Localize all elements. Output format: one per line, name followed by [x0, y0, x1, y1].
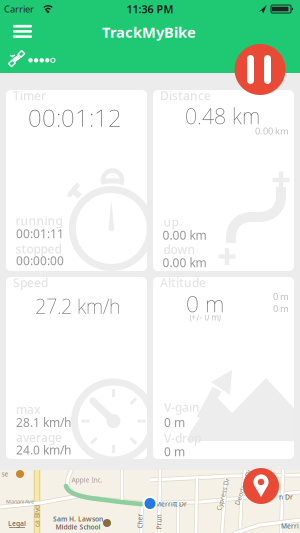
staticText: Merritt Dr	[155, 500, 187, 508]
staticText: Cher	[132, 517, 147, 525]
staticText: Middle School	[55, 523, 100, 531]
staticText: running	[15, 213, 62, 229]
staticText: 24.0 km/h	[16, 442, 71, 458]
staticText: TrackMyBike	[102, 22, 196, 42]
staticText: Mariani Ave	[6, 498, 34, 505]
staticText: n Dr	[279, 493, 293, 501]
staticText: Merri	[281, 522, 299, 530]
staticText: average	[16, 429, 62, 445]
staticText: 0 m	[164, 444, 185, 460]
staticText: V-drop	[164, 430, 201, 446]
staticText: 00:01:11	[16, 225, 64, 241]
staticText: Cypress Dr	[206, 490, 240, 498]
staticText: max	[16, 401, 41, 417]
staticText: Prun	[151, 518, 166, 526]
button[interactable]: Menu	[11, 24, 33, 39]
staticText: Sam H. Lawson	[53, 515, 103, 523]
staticText: Deodara Dr	[224, 483, 262, 491]
staticText: 0 m	[164, 414, 185, 430]
button[interactable]: Show current location	[243, 468, 279, 504]
button[interactable]: Pause	[234, 44, 285, 95]
staticText: Speed	[13, 274, 48, 290]
staticText: 0.00 km	[255, 125, 289, 137]
staticText: 0 m	[273, 302, 289, 315]
staticText: Altitude	[160, 274, 206, 290]
staticText: stopped	[15, 241, 61, 257]
staticText: down	[163, 241, 195, 257]
staticText: 00:01:12	[28, 102, 122, 133]
staticText: Legal	[8, 519, 26, 528]
staticText: Apple Inc.	[71, 476, 102, 484]
staticText: 0 m	[186, 288, 224, 318]
staticText: Distance	[160, 87, 211, 103]
staticText: 0.00 km	[162, 254, 206, 270]
staticText: Timer	[13, 87, 46, 103]
staticText: up	[163, 214, 178, 230]
staticText: 00:00:00	[16, 253, 64, 269]
staticText: 27.2 km/h	[35, 293, 120, 319]
staticText: 11:36 PM	[126, 2, 173, 16]
staticText: Carrier	[4, 3, 34, 15]
staticText: 0 m	[273, 290, 289, 303]
staticText: V-gain	[164, 399, 200, 415]
staticText: (+/- 0 m)	[189, 312, 220, 323]
staticText: 0.00 km	[162, 227, 206, 243]
staticText: ca Blvd	[26, 512, 48, 520]
staticText: 0.48 km	[185, 102, 260, 130]
staticText: se	[1, 470, 8, 478]
staticText: 28.1 km/h	[16, 414, 71, 430]
